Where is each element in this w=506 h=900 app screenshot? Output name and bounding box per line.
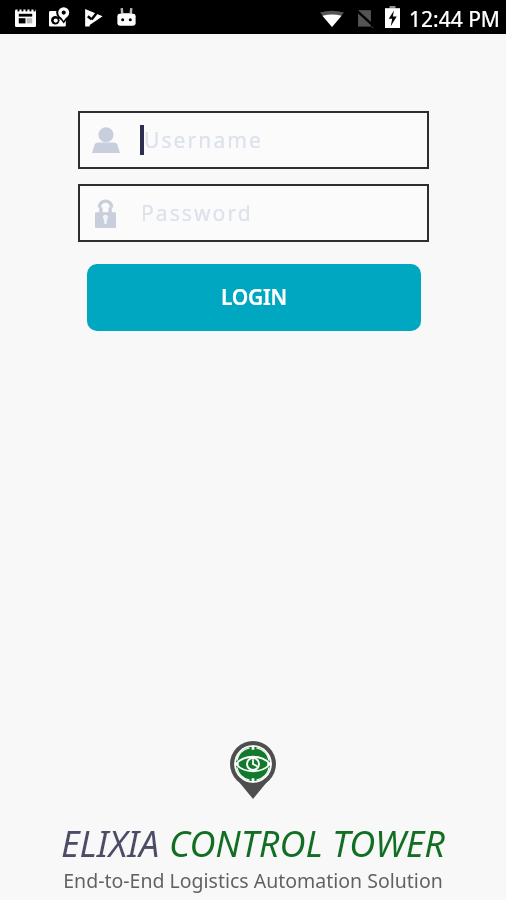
staticText: Username — [144, 126, 263, 155]
button[interactable]: Username input field — [78, 111, 429, 169]
button[interactable]: Password input field — [78, 184, 429, 242]
button[interactable]: LOGIN — [87, 264, 421, 331]
staticText: Password — [141, 199, 253, 228]
staticText: End-to-End Logistics Automation Solution — [0, 867, 506, 894]
staticText: 12:44 PM — [409, 5, 500, 34]
staticText: ELIXIA — [61, 819, 169, 868]
staticText: CONTROL TOWER — [169, 819, 445, 868]
staticText: LOGIN — [221, 283, 287, 312]
